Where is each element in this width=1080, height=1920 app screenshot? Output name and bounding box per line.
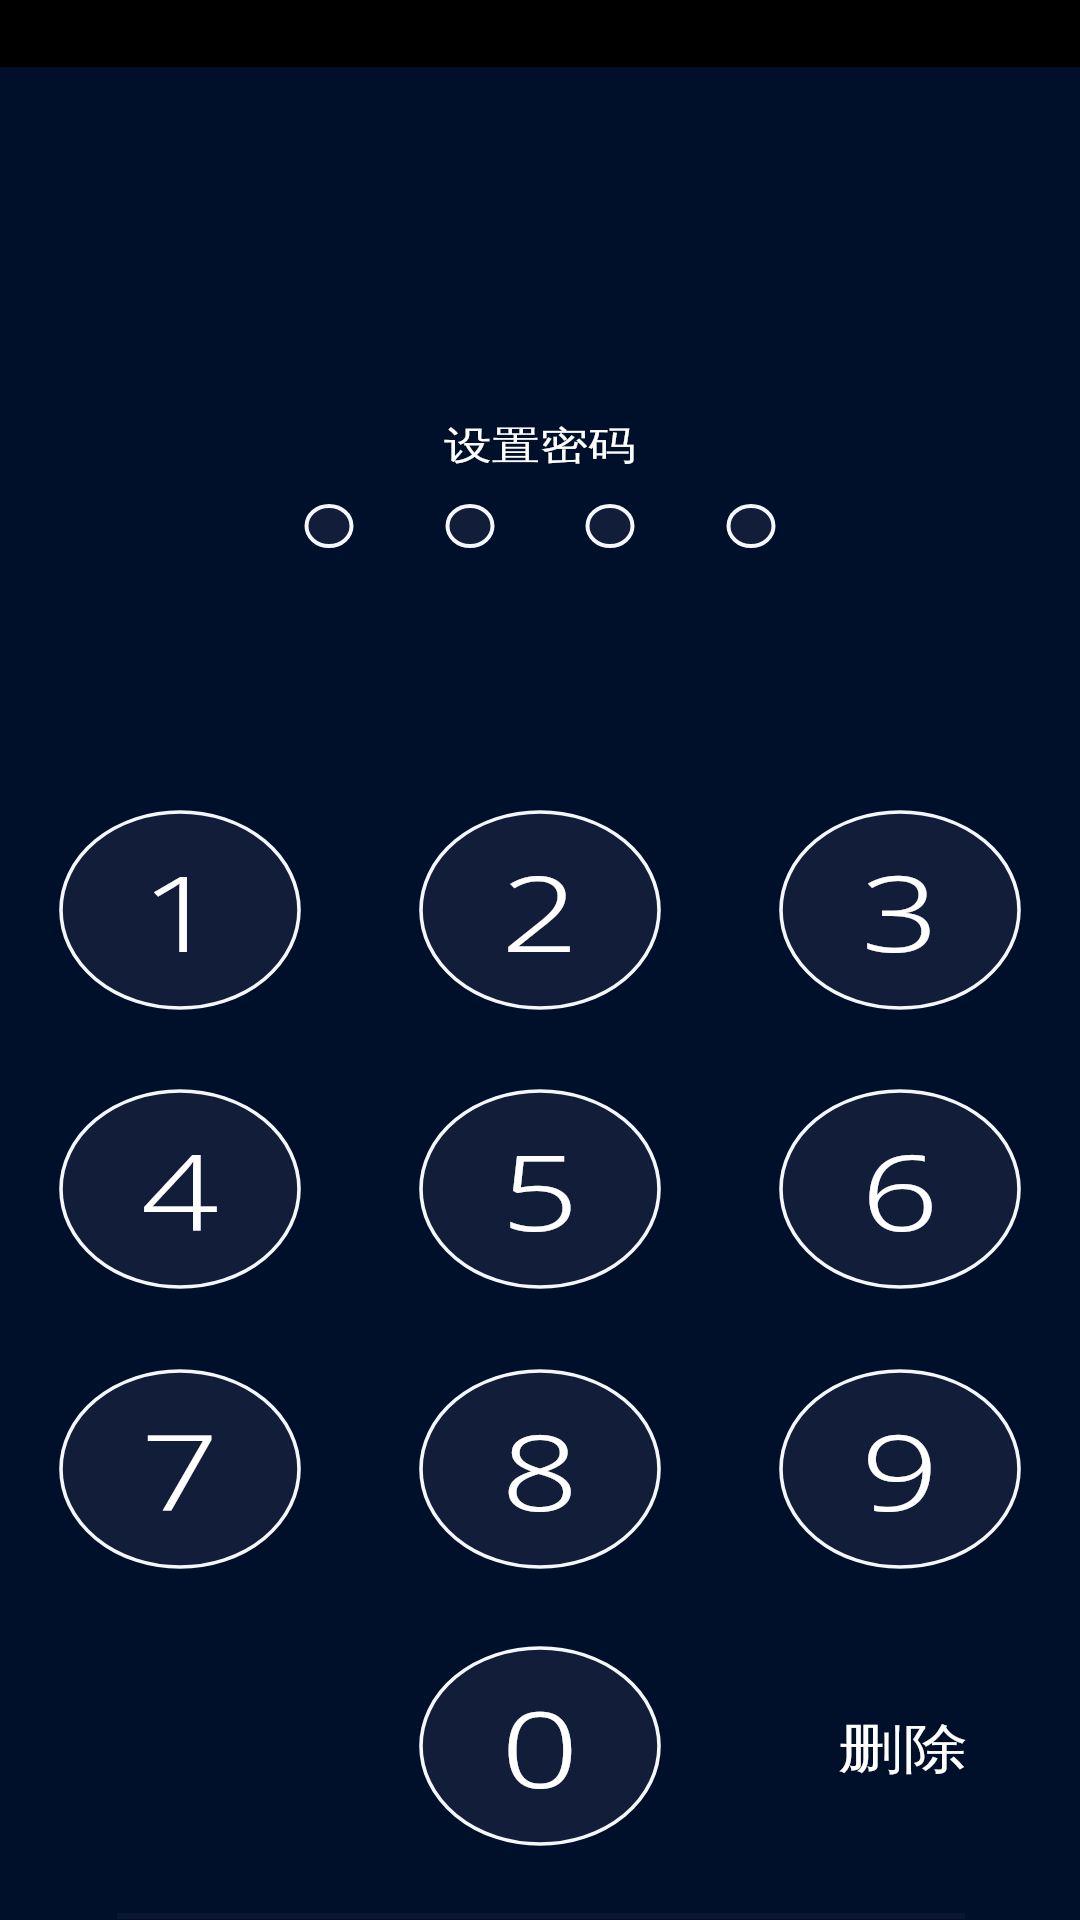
staticText: 7	[141, 1400, 219, 1542]
staticText: 0	[501, 1677, 579, 1819]
staticText: 4	[141, 1120, 219, 1262]
staticText: 5	[501, 1120, 579, 1262]
staticText: 删除	[838, 1716, 968, 1783]
button[interactable]: 4	[61, 1091, 299, 1287]
button[interactable]: 删除	[781, 1648, 1019, 1844]
button[interactable]: 5	[421, 1091, 659, 1287]
button[interactable]: 0	[421, 1648, 659, 1844]
button[interactable]: 8	[421, 1371, 659, 1567]
button[interactable]: 9	[781, 1371, 1019, 1567]
staticText: 3	[861, 841, 939, 983]
staticText: 9	[861, 1400, 939, 1542]
staticText: 2	[501, 841, 579, 983]
button[interactable]: 1	[61, 812, 299, 1008]
button[interactable]: 2	[421, 812, 659, 1008]
staticText: 设置密码	[444, 421, 636, 470]
button[interactable]: 3	[781, 812, 1019, 1008]
staticText: 1	[141, 841, 219, 983]
button[interactable]: 6	[781, 1091, 1019, 1287]
staticText: 6	[861, 1120, 939, 1262]
button[interactable]: 7	[61, 1371, 299, 1567]
staticText: 8	[501, 1400, 579, 1542]
